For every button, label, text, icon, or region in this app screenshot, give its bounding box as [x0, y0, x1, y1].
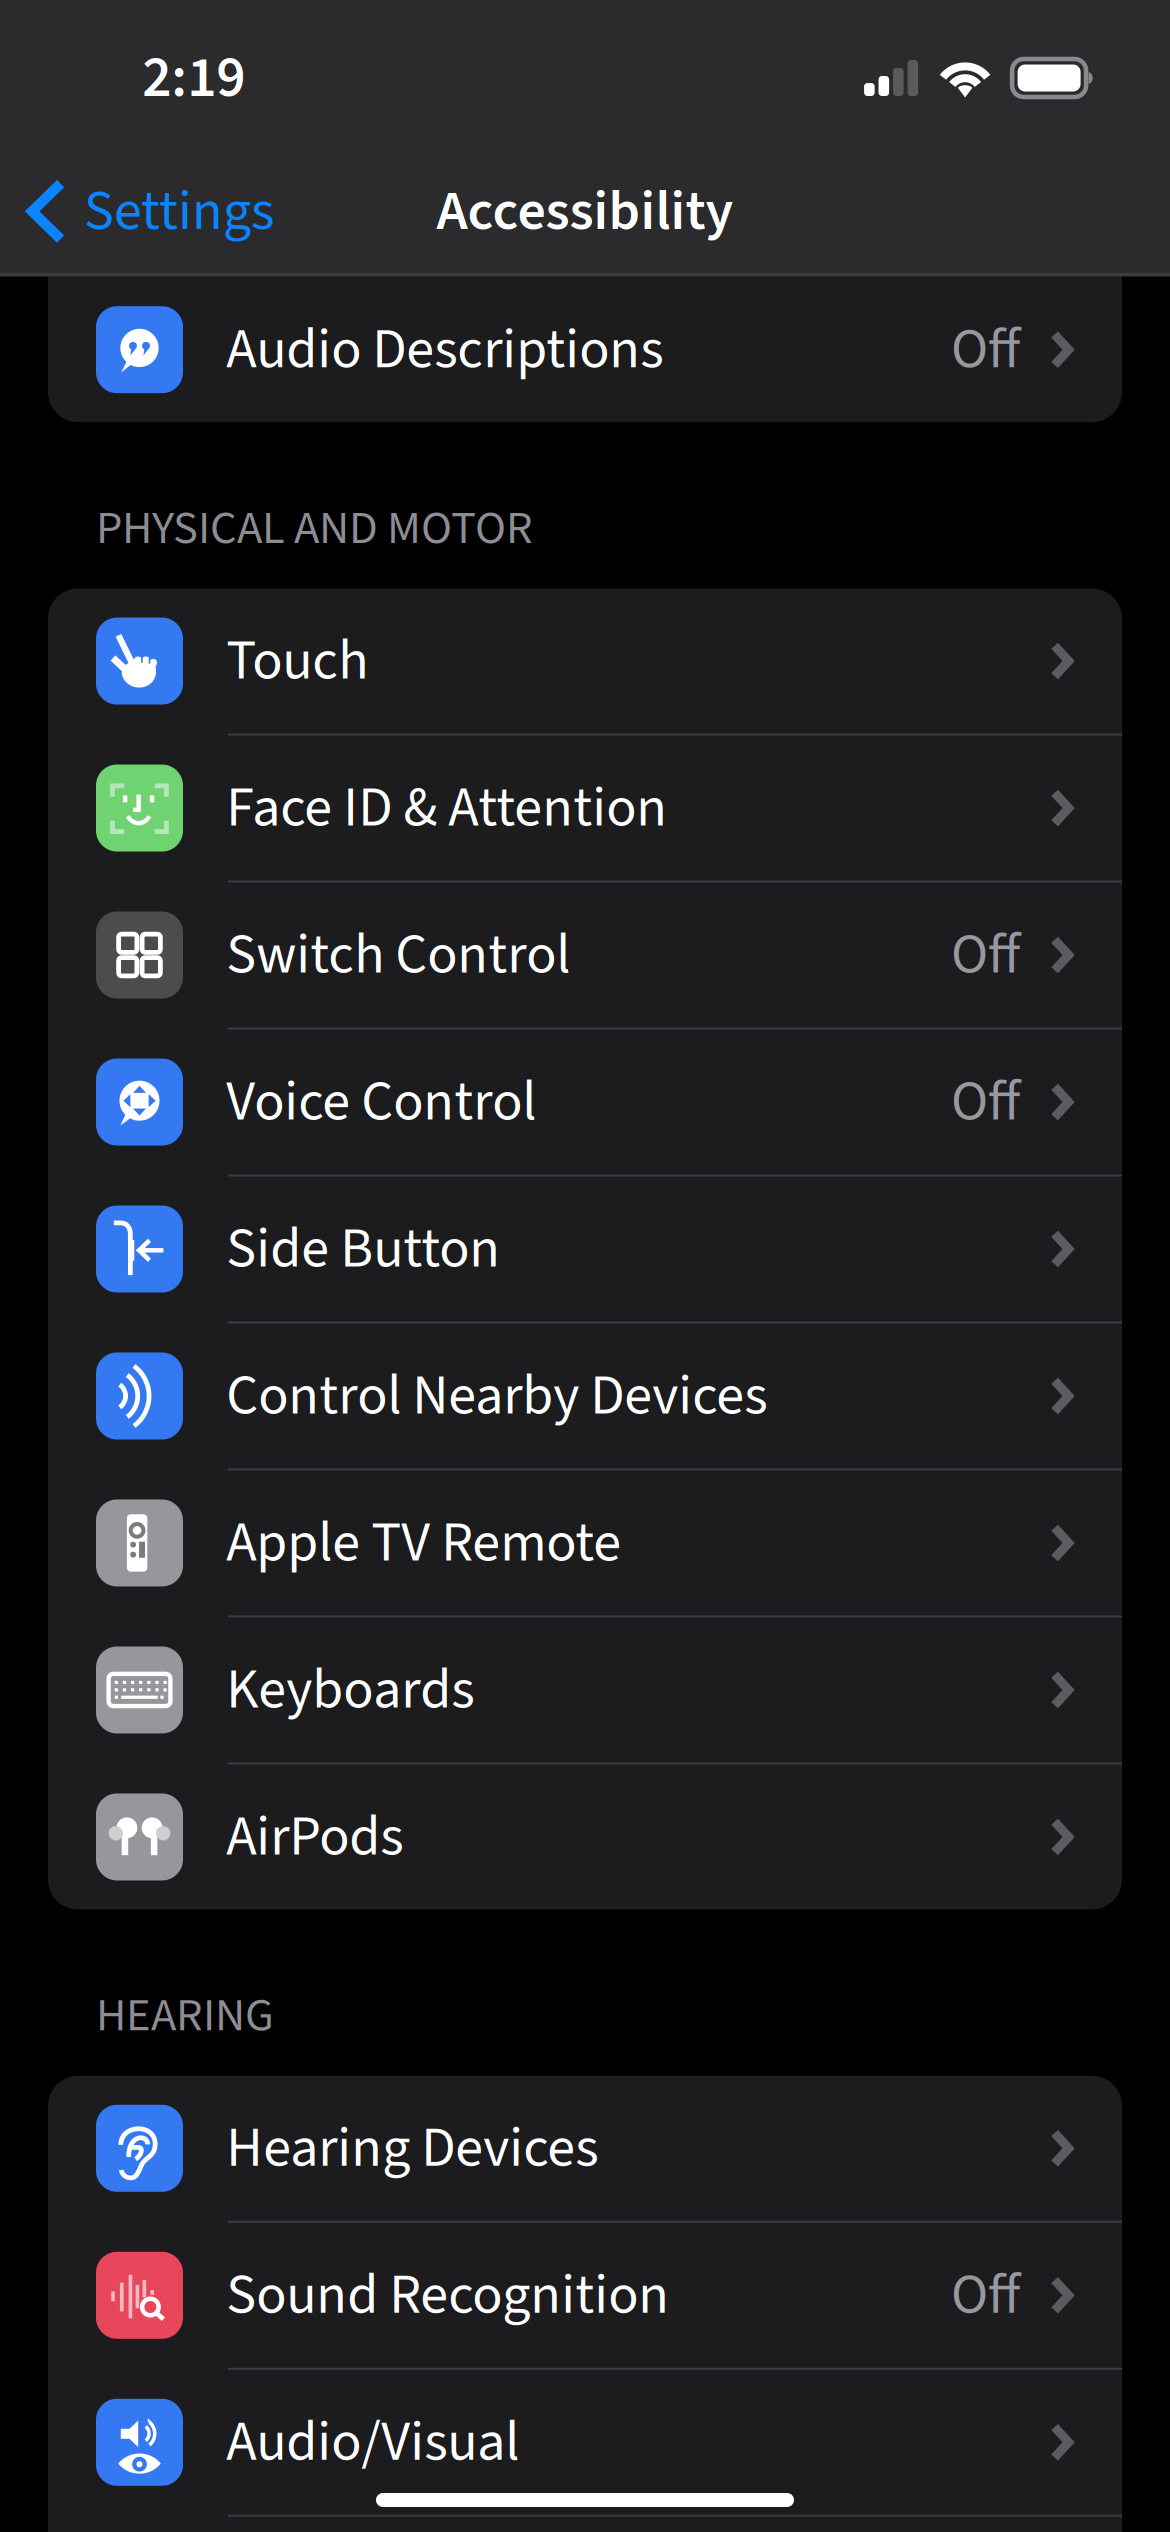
- staticText: Audio/Visual: [226, 2402, 519, 2482]
- staticText: HEARING: [96, 1982, 274, 2049]
- button[interactable]: Face ID & Attention: [48, 735, 1122, 880]
- staticText: Voice Control: [226, 1062, 536, 1142]
- button[interactable]: Touch: [48, 588, 1122, 733]
- staticText: Switch Control: [226, 915, 570, 995]
- staticText: Touch: [226, 621, 368, 701]
- staticText: Off: [951, 2255, 1020, 2335]
- button[interactable]: Voice Control: [48, 1029, 1122, 1174]
- staticText: PHYSICAL AND MOTOR: [96, 495, 533, 562]
- staticText: 2:19: [142, 37, 245, 119]
- button[interactable]: Sound Recognition: [48, 2223, 1122, 2368]
- staticText: Settings: [84, 172, 274, 251]
- button[interactable]: Audio Descriptions: [48, 277, 1122, 422]
- staticText: Control Nearby Devices: [226, 1356, 767, 1436]
- button[interactable]: Audio/Visual: [48, 2370, 1122, 2515]
- staticText: Side Button: [226, 1209, 500, 1289]
- staticText: Audio Descriptions: [226, 310, 663, 389]
- staticText: Apple TV Remote: [226, 1503, 621, 1583]
- button[interactable]: Keyboards: [48, 1617, 1122, 1762]
- button[interactable]: Side Button: [48, 1176, 1122, 1321]
- staticText: Off: [951, 310, 1020, 389]
- staticText: Face ID & Attention: [226, 768, 667, 848]
- staticText: Accessibility: [436, 172, 733, 251]
- staticText: Hearing Devices: [226, 2108, 598, 2188]
- button[interactable]: Control Nearby Devices: [48, 1323, 1122, 1468]
- button[interactable]: AirPods: [48, 1764, 1122, 1909]
- button[interactable]: Hearing Devices: [48, 2076, 1122, 2221]
- staticText: Sound Recognition: [226, 2255, 669, 2335]
- staticText: Off: [951, 1062, 1020, 1142]
- staticText: Keyboards: [226, 1650, 474, 1730]
- button[interactable]: Switch Control: [48, 882, 1122, 1027]
- button[interactable]: Apple TV Remote: [48, 1470, 1122, 1615]
- staticText: Off: [951, 915, 1020, 995]
- button[interactable]: Settings: [0, 150, 298, 273]
- staticText: AirPods: [226, 1797, 403, 1877]
